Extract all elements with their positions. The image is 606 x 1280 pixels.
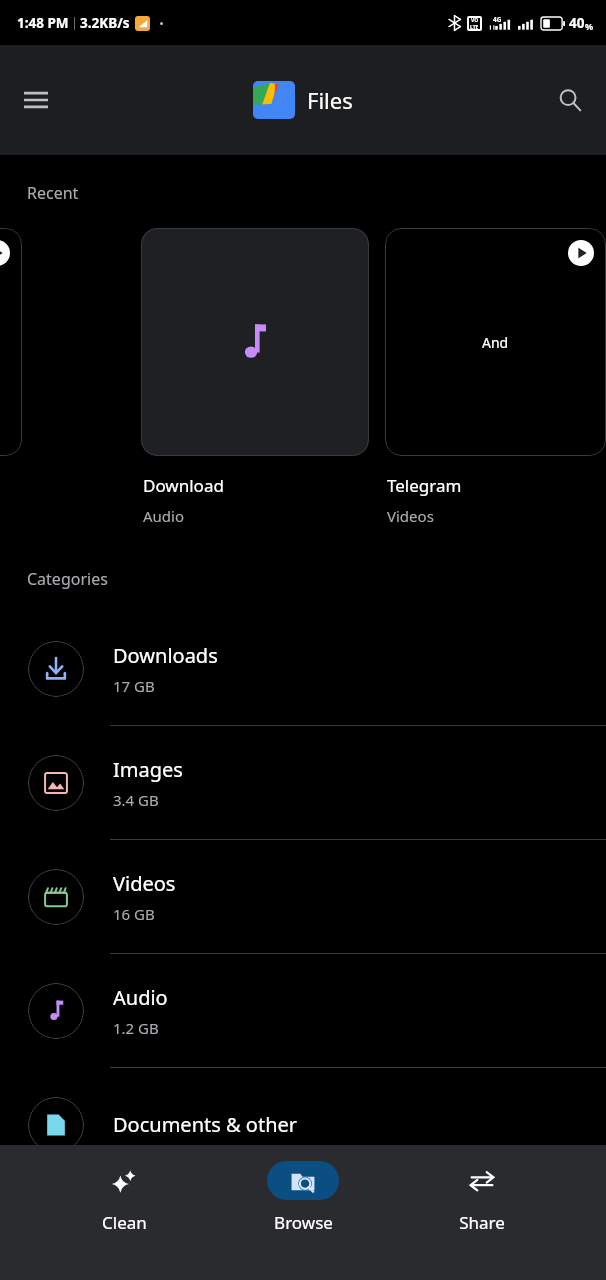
staticText: Share	[459, 1211, 505, 1234]
staticText: Files	[307, 85, 353, 115]
staticText: %	[585, 20, 594, 32]
staticText: Downloads	[113, 642, 218, 669]
button[interactable]: Search	[546, 76, 594, 124]
button[interactable]: Menu	[12, 76, 60, 124]
button[interactable]: Clean	[69, 1161, 179, 1234]
staticText: Audio	[113, 984, 168, 1011]
staticText: Recent	[27, 182, 79, 204]
staticText: Download	[143, 474, 224, 497]
button[interactable]: And	[0, 228, 22, 456]
staticText: Images	[113, 756, 183, 783]
staticText: 17 GB	[113, 676, 155, 696]
button[interactable]: Audio	[0, 954, 606, 1068]
staticText: 1:48 PM	[17, 14, 69, 32]
staticText: VO	[471, 17, 479, 24]
staticText: Browse	[274, 1211, 333, 1234]
button[interactable]: Downloads	[0, 612, 606, 726]
button[interactable]: And	[385, 228, 606, 526]
button[interactable]: Share	[427, 1161, 537, 1234]
button[interactable]: Download	[141, 228, 369, 526]
button[interactable]: Images	[0, 726, 606, 840]
staticText: 1.2 GB	[113, 1018, 159, 1038]
staticText: 40	[569, 14, 585, 32]
staticText: Videos	[387, 506, 434, 526]
staticText: 3.4 GB	[113, 790, 159, 810]
button[interactable]: Videos	[0, 840, 606, 954]
staticText: And	[482, 333, 509, 352]
button[interactable]: Documents & other	[0, 1068, 606, 1181]
button[interactable]: Browse	[248, 1161, 358, 1234]
staticText: Documents & other	[113, 1111, 298, 1138]
staticText: 16 GB	[113, 904, 155, 924]
staticText: Clean	[102, 1211, 147, 1234]
staticText: Telegram	[387, 474, 462, 497]
staticText: Audio	[143, 506, 185, 526]
staticText: 3.2KB/s	[80, 14, 130, 32]
staticText: 4G	[493, 15, 502, 24]
staticText: Videos	[113, 870, 176, 897]
staticText: Categories	[27, 568, 108, 590]
staticText: LTE	[470, 24, 479, 31]
